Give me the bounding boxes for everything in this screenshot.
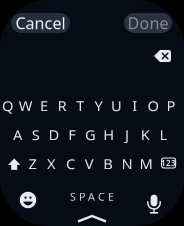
button[interactable]: Z: [24, 152, 41, 175]
button[interactable]: A: [9, 123, 26, 146]
button[interactable]: Y: [90, 94, 107, 117]
button[interactable]: Done: [124, 13, 172, 33]
button[interactable]: Numbers and symbols: [158, 151, 180, 174]
staticText: Y: [94, 96, 102, 115]
staticText: T: [76, 96, 84, 115]
staticText: O: [147, 96, 158, 115]
button[interactable]: Dictation: [142, 188, 166, 212]
staticText: U: [111, 96, 122, 115]
staticText: J: [125, 125, 129, 144]
button[interactable]: Emoji: [15, 187, 41, 213]
staticText: N: [122, 154, 133, 173]
staticText: L: [160, 125, 168, 144]
staticText: Cancel: [15, 12, 65, 34]
button[interactable]: D: [46, 123, 63, 146]
staticText: S: [32, 125, 40, 144]
button[interactable]: Delete: [149, 45, 175, 67]
staticText: G: [85, 125, 96, 144]
staticText: A: [13, 125, 22, 144]
staticText: Z: [29, 154, 37, 173]
staticText: P: [166, 96, 175, 115]
staticText: D: [49, 125, 60, 144]
staticText: R: [58, 96, 67, 115]
staticText: S P A C E: [70, 189, 114, 204]
button[interactable]: Q: [0, 94, 16, 117]
button[interactable]: Cancel: [11, 13, 70, 33]
button[interactable]: E: [35, 94, 52, 117]
button[interactable]: R: [54, 94, 71, 117]
button[interactable]: S: [27, 123, 44, 146]
staticText: I: [132, 96, 137, 115]
staticText: H: [103, 125, 114, 144]
button[interactable]: X: [43, 152, 60, 175]
button[interactable]: G: [82, 123, 99, 146]
staticText: V: [85, 154, 94, 173]
button[interactable]: J: [119, 123, 136, 146]
button[interactable]: Shift: [3, 153, 25, 176]
button[interactable]: K: [137, 123, 154, 146]
button[interactable]: B: [100, 152, 117, 175]
button[interactable]: I: [126, 94, 143, 117]
button[interactable]: H: [100, 123, 117, 146]
button[interactable]: O: [144, 94, 161, 117]
staticText: X: [47, 154, 56, 173]
staticText: K: [141, 125, 150, 144]
staticText: E: [40, 96, 48, 115]
staticText: F: [68, 125, 76, 144]
staticText: W: [19, 96, 33, 115]
staticText: B: [103, 154, 113, 173]
staticText: M: [139, 154, 152, 173]
button[interactable]: V: [81, 152, 98, 175]
button[interactable]: W: [17, 94, 34, 117]
staticText: Q: [2, 96, 13, 115]
button[interactable]: N: [119, 152, 136, 175]
button[interactable]: M: [137, 152, 154, 175]
button[interactable]: L: [155, 123, 172, 146]
staticText: C: [66, 154, 75, 173]
button[interactable]: C: [62, 152, 79, 175]
button[interactable]: P: [162, 94, 179, 117]
button[interactable]: T: [72, 94, 89, 117]
staticText: 123: [161, 158, 176, 168]
staticText: Done: [127, 12, 168, 34]
button[interactable]: S P A C E: [70, 185, 114, 207]
button[interactable]: U: [108, 94, 125, 117]
button[interactable]: F: [64, 123, 81, 146]
